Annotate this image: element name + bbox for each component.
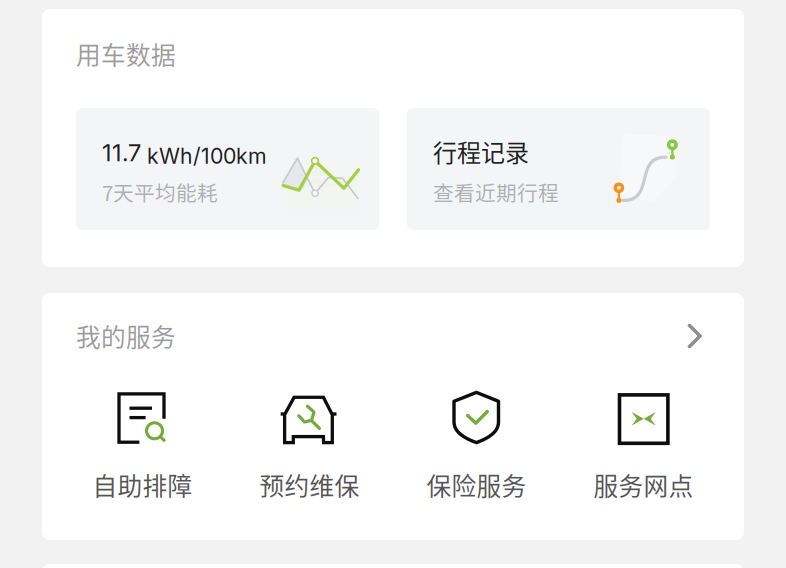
- staticText: 预约维保: [259, 467, 359, 503]
- staticText: kWh/100km: [147, 143, 267, 169]
- staticText: 用车数据: [76, 36, 176, 72]
- button[interactable]: 自助排障: [59, 387, 226, 503]
- button[interactable]: 保险服务: [393, 387, 560, 503]
- button[interactable]: 11.7: [76, 108, 379, 230]
- staticText: 自助排障: [92, 467, 192, 503]
- staticText: 查看近期行程: [433, 177, 559, 207]
- staticText: 11.7: [102, 138, 141, 167]
- button[interactable]: 服务网点: [560, 387, 727, 503]
- staticText: 7天平均能耗: [102, 177, 218, 207]
- staticText: 我的服务: [76, 318, 176, 354]
- button[interactable]: 行程记录: [407, 108, 710, 230]
- staticText: 保险服务: [426, 467, 526, 503]
- staticText: 行程记录: [433, 134, 529, 169]
- staticText: 服务网点: [593, 467, 693, 503]
- button[interactable]: 查看全部服务: [686, 322, 716, 354]
- button[interactable]: 预约维保: [226, 387, 393, 503]
